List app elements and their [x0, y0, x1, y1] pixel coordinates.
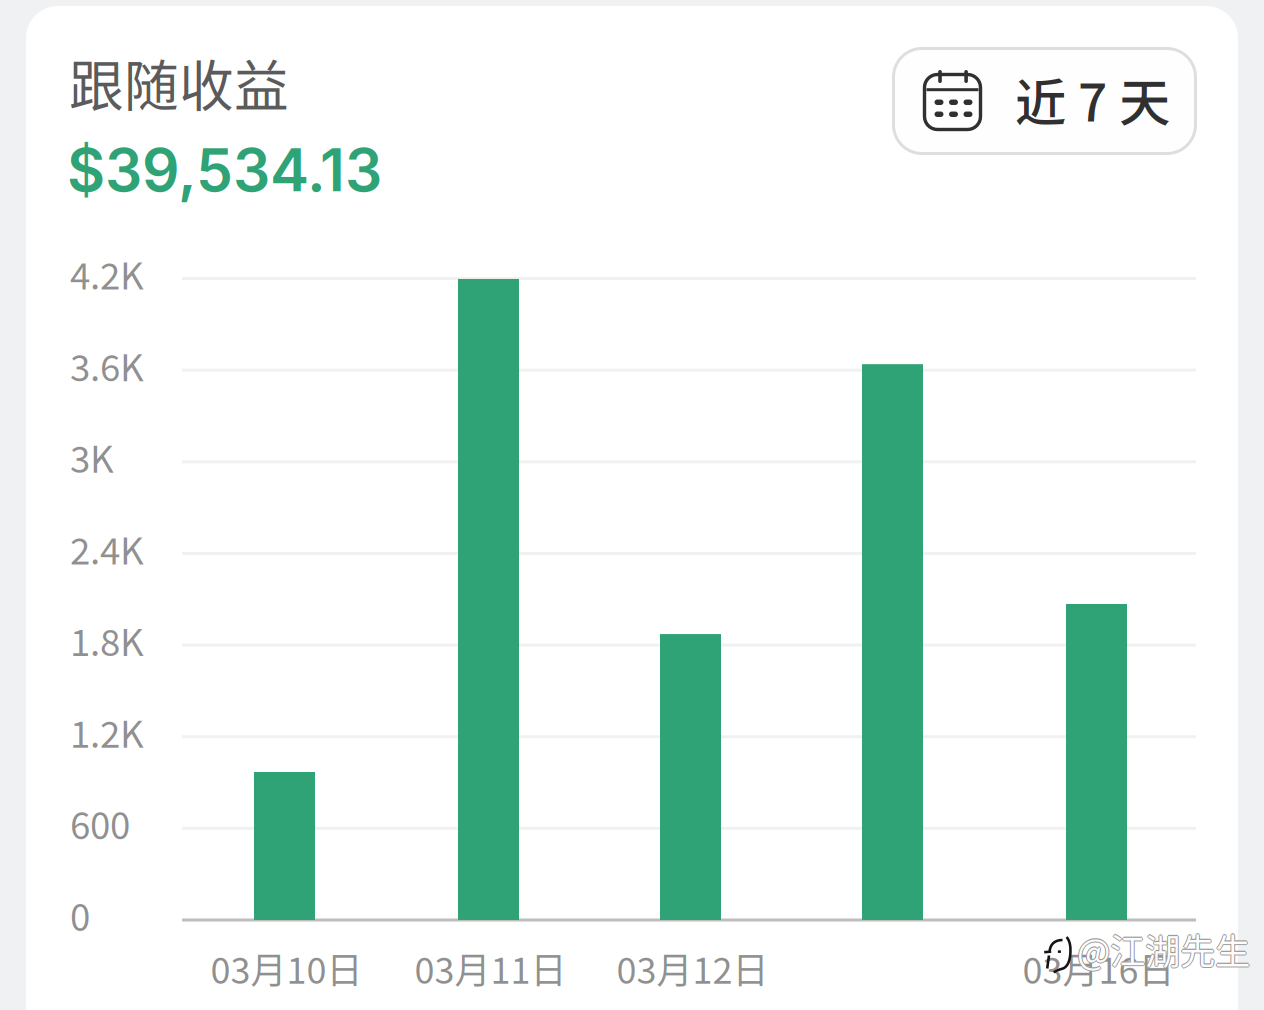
staticText: 跟随收益 [69, 42, 289, 122]
staticText: @江湖先生 [1076, 923, 1249, 975]
staticText: @江湖先生 [1077, 924, 1250, 976]
staticText: 600 [70, 797, 130, 850]
staticText: 1.8K [70, 613, 144, 667]
staticText: 1.2K [70, 705, 144, 758]
staticText: 03月12日 [616, 942, 768, 994]
staticText: 近 7 天 [1015, 62, 1170, 136]
staticText: @江湖先生 [1078, 923, 1251, 975]
button[interactable]: 近 7 天，选择日期范围 [892, 47, 1197, 155]
staticText: @江湖先生 [1077, 923, 1250, 975]
staticText: 03月11日 [414, 942, 566, 994]
staticText: 0 [70, 888, 90, 942]
staticText: @江湖先生 [1077, 922, 1250, 973]
staticText: $39,534.13 [67, 134, 382, 205]
staticText: 3K [70, 430, 114, 483]
staticText: 4.2K [70, 247, 144, 300]
staticText: 03月10日 [210, 942, 362, 994]
staticText: 3.6K [70, 339, 144, 392]
staticText: 03月16日 [1022, 942, 1174, 994]
staticText: 2.4K [70, 522, 144, 575]
